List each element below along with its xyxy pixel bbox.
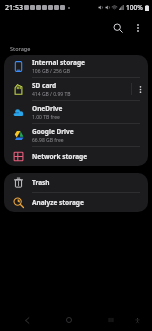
staticText: 100% [126,3,143,12]
staticText: 106 GB / 256 GB [32,68,71,75]
staticText: Google Drive [32,127,74,136]
button[interactable]: Back [18,311,36,329]
button[interactable]: Analyze storage [4,193,148,212]
button[interactable]: SD card [4,78,148,100]
button[interactable]: Recents [102,311,120,329]
button[interactable]: More options [128,18,148,38]
staticText: OneDrive [32,104,63,113]
staticText: Network storage [32,152,88,161]
button[interactable]: OneDrive [4,101,148,123]
staticText: 414 GB / 0.99 TB [32,91,71,98]
button[interactable]: Trash [4,173,148,192]
staticText: 66.98 GB free [32,137,64,144]
button[interactable]: Home [60,311,78,329]
staticText: 1.00 TB free [32,114,60,121]
button[interactable]: SD card options [132,78,148,100]
staticText: Internal storage [32,58,85,67]
staticText: SD card [32,81,57,90]
button[interactable]: Accessibility [130,313,144,327]
button[interactable]: Network storage [4,147,148,166]
button[interactable]: Search [108,18,128,38]
staticText: Storage [10,45,31,52]
button[interactable]: Internal storage [4,55,148,77]
staticText: Analyze storage [32,198,84,207]
staticText: 21:53 [5,3,23,13]
button[interactable]: Google Drive [4,124,148,146]
staticText: Trash [32,178,50,187]
